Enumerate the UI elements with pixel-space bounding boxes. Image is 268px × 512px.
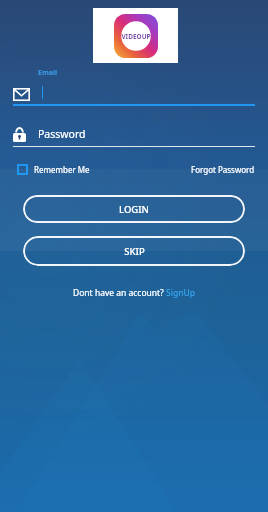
button[interactable]: Password	[13, 123, 255, 145]
other: Email	[13, 88, 30, 101]
staticText: Dont have an account?	[73, 287, 166, 299]
button[interactable]: SignUp	[166, 287, 196, 299]
staticText: Password	[38, 127, 86, 141]
staticText: SKIP	[124, 245, 145, 258]
staticText: VIDEOUP	[121, 32, 151, 41]
other: Password	[13, 127, 26, 142]
staticText: LOGIN	[119, 203, 149, 216]
button[interactable]: Forgot Password	[191, 164, 255, 175]
button[interactable]: SKIP	[23, 236, 245, 266]
button[interactable]: Email	[13, 82, 255, 106]
button[interactable]: LOGIN	[23, 195, 245, 223]
staticText: SignUp	[166, 287, 196, 299]
button[interactable]: Remember Me	[17, 164, 90, 175]
staticText: Remember Me	[34, 164, 90, 175]
staticText: Email	[38, 68, 58, 78]
staticText: Forgot Password	[191, 164, 255, 175]
